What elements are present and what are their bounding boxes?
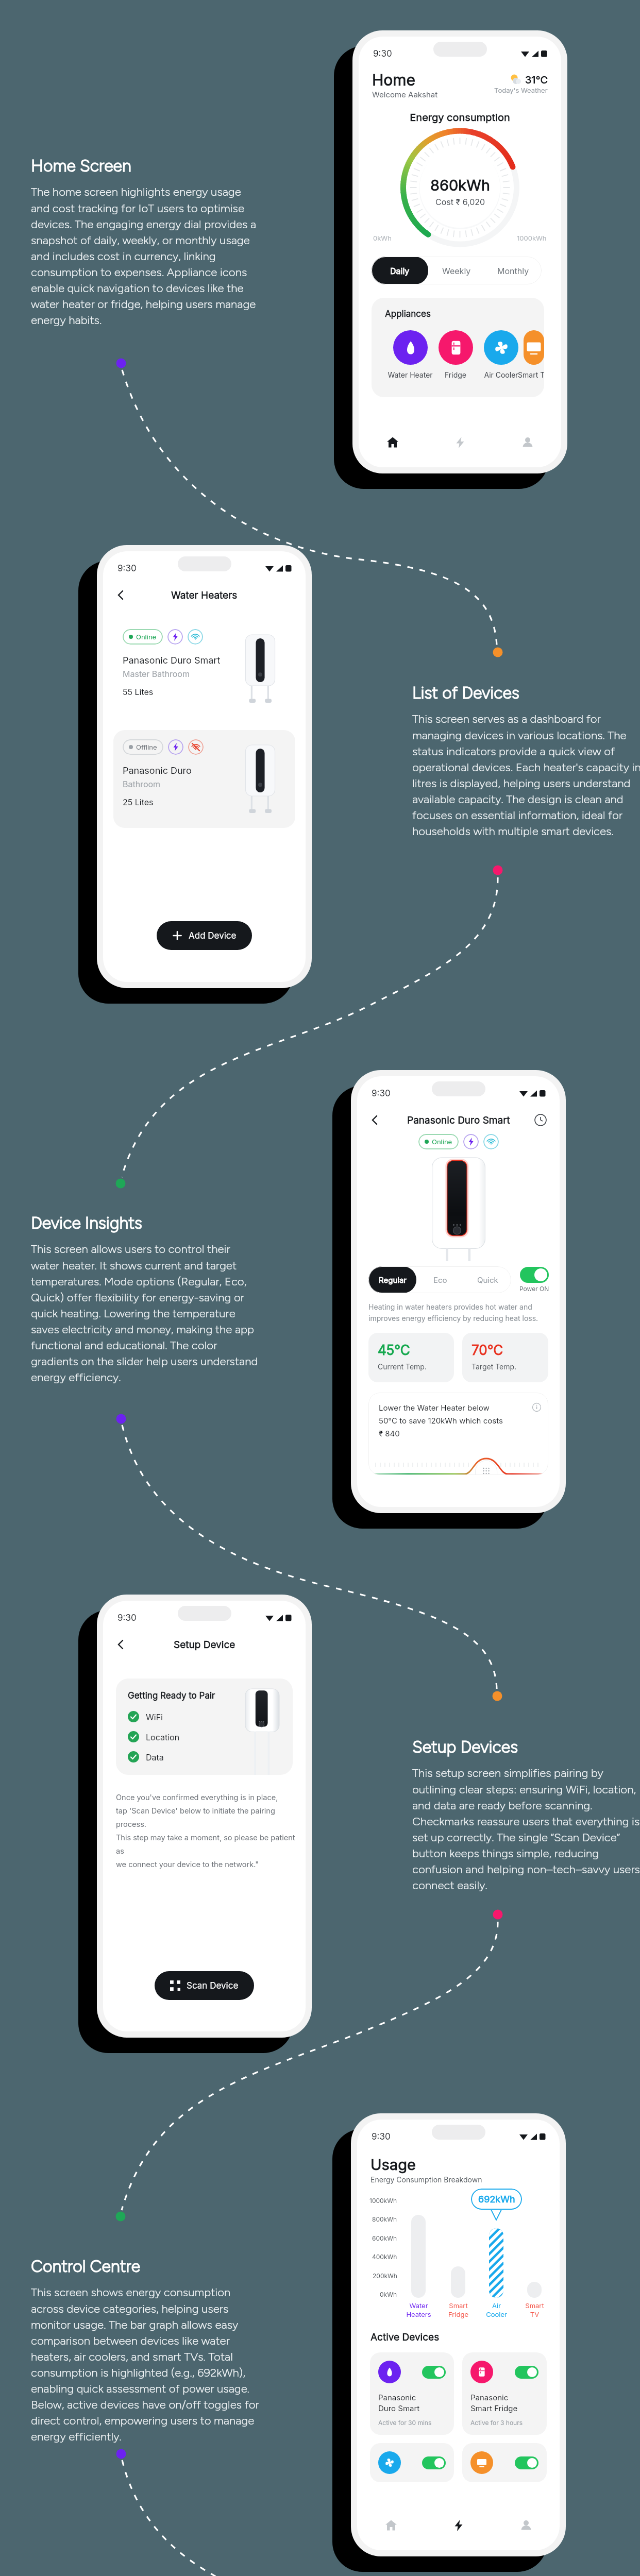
button[interactable]: Home xyxy=(359,426,426,459)
staticText: 70°C xyxy=(471,1342,503,1358)
staticText: Panasonic Duro xyxy=(123,765,192,776)
staticText: Welcome Aakshat xyxy=(372,90,438,99)
button[interactable]: History xyxy=(533,1112,548,1128)
button[interactable]: Toggle xyxy=(370,2443,454,2482)
staticText: 0kWh xyxy=(373,234,392,242)
button[interactable]: Back xyxy=(366,1111,384,1129)
staticText: Lower the Water Heater below 50°C to sav… xyxy=(379,1403,505,1438)
staticText: 9:30 xyxy=(117,563,137,574)
button[interactable]: Wi-Fi off xyxy=(188,739,204,755)
button[interactable]: Data xyxy=(128,1751,164,1762)
button[interactable]: Air Cooler xyxy=(478,330,524,379)
button[interactable]: 45°C xyxy=(368,1333,454,1382)
staticText: 25 Lites xyxy=(123,797,154,807)
button[interactable]: Online xyxy=(418,1134,459,1149)
button[interactable]: Location xyxy=(128,1731,180,1742)
staticText: Heating in water heaters provides hot wa… xyxy=(368,1302,548,1323)
staticText: Active Devices xyxy=(370,2331,440,2343)
staticText: 800kWh xyxy=(372,2215,397,2223)
button[interactable]: Energy xyxy=(426,426,494,459)
staticText: Smart TV xyxy=(525,2301,544,2319)
staticText: This screen allows users to control thei… xyxy=(31,1242,260,1384)
staticText: Target Temp. xyxy=(471,1362,517,1371)
staticText: 200kWh xyxy=(373,2272,397,2280)
button[interactable]: WiFi xyxy=(128,1711,163,1722)
button[interactable]: Toggle xyxy=(370,2352,454,2435)
button[interactable]: Wi-Fi xyxy=(483,1134,499,1149)
button[interactable]: Power toggle xyxy=(520,1267,549,1283)
staticText: Getting Ready to Pair xyxy=(128,1690,215,1701)
button[interactable]: Add Device xyxy=(157,921,252,950)
button[interactable]: Power xyxy=(167,629,183,645)
staticText: Quick xyxy=(477,1275,498,1284)
staticText: This setup screen simplifies pairing by … xyxy=(412,1766,640,1892)
button[interactable]: Daily xyxy=(372,257,428,284)
button[interactable]: Toggle xyxy=(462,2352,547,2435)
staticText: Online xyxy=(432,1138,452,1146)
staticText: Smart Fridge xyxy=(448,2301,468,2319)
button[interactable]: Toggle xyxy=(422,2366,446,2379)
staticText: Weekly xyxy=(442,266,471,276)
staticText: Active for 30 mins xyxy=(378,2419,432,2427)
staticText: Device Insights xyxy=(31,1213,142,1233)
button[interactable]: 70°C xyxy=(462,1333,548,1382)
staticText: 9:30 xyxy=(117,1613,137,1623)
staticText: Add Device xyxy=(189,930,237,941)
staticText: Usage xyxy=(370,2156,416,2174)
button[interactable]: Profile xyxy=(492,2509,560,2542)
button[interactable]: Power xyxy=(463,1134,479,1149)
staticText: Current Temp. xyxy=(378,1362,427,1371)
staticText: Data xyxy=(146,1752,164,1762)
button[interactable]: Scan Device xyxy=(155,1971,254,2000)
staticText: Offline xyxy=(136,743,157,751)
staticText: Smart TV xyxy=(518,370,544,379)
button[interactable]: Toggle xyxy=(462,2443,547,2482)
staticText: 31°C xyxy=(525,74,548,86)
staticText: Daily xyxy=(390,266,410,276)
staticText: Eco xyxy=(433,1275,447,1284)
staticText: Setup Devices xyxy=(412,1737,518,1757)
staticText: Appliances xyxy=(385,309,431,319)
staticText: Home Screen xyxy=(31,156,131,176)
staticText: Control Centre xyxy=(31,2257,141,2276)
staticText: 860kWh xyxy=(430,176,490,194)
staticText: Regular xyxy=(379,1275,407,1284)
button[interactable]: Profile xyxy=(494,426,561,459)
button[interactable]: Online xyxy=(113,620,295,718)
button[interactable]: Home xyxy=(357,2509,425,2542)
button[interactable]: Weekly xyxy=(428,257,485,284)
button[interactable]: Toggle xyxy=(515,2456,538,2469)
button[interactable]: Back xyxy=(112,1636,130,1653)
button[interactable]: Offline xyxy=(113,730,295,828)
staticText: Energy consumption xyxy=(359,111,561,124)
button[interactable]: Wi-Fi xyxy=(188,629,203,645)
staticText: Bathroom xyxy=(123,779,161,789)
staticText: Water Heaters xyxy=(406,2301,431,2319)
button[interactable]: 692kWh xyxy=(471,2189,522,2210)
staticText: 1000kWh xyxy=(517,234,547,242)
button[interactable]: Fridge xyxy=(433,330,478,379)
staticText: Master Bathroom xyxy=(123,669,190,679)
staticText: 692kWh xyxy=(478,2194,515,2205)
staticText: Panasonic Duro Smart xyxy=(378,2393,420,2413)
staticText: This screen shows energy consumption acr… xyxy=(31,2285,260,2443)
button[interactable]: Quick xyxy=(464,1266,511,1293)
button[interactable]: Power xyxy=(168,739,183,755)
button[interactable]: Online xyxy=(123,629,163,645)
staticText: Active for 3 hours xyxy=(470,2419,523,2427)
button[interactable]: Back xyxy=(112,586,130,604)
button[interactable]: Toggle xyxy=(422,2456,446,2469)
button[interactable]: Energy xyxy=(425,2509,492,2542)
button[interactable]: Smart TV xyxy=(524,330,544,379)
button[interactable]: Toggle xyxy=(515,2366,538,2379)
button[interactable]: Eco xyxy=(416,1266,464,1293)
staticText: Home xyxy=(372,71,416,89)
button[interactable]: Offline xyxy=(123,739,163,755)
staticText: Power ON xyxy=(519,1285,549,1293)
button[interactable]: Regular xyxy=(368,1266,416,1293)
staticText: Monthly xyxy=(497,266,529,276)
staticText: Air Cooler xyxy=(484,370,518,379)
button[interactable]: Monthly xyxy=(485,257,542,284)
staticText: 9:30 xyxy=(372,2131,391,2142)
button[interactable]: Water Heater xyxy=(388,330,433,379)
